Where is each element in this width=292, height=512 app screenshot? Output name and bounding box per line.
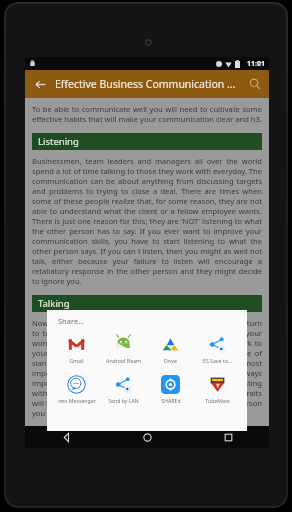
button[interactable]: SHAREit (147, 374, 194, 405)
staticText: Effective Business Communication Skills (55, 77, 241, 91)
staticText: ES Save to... (203, 357, 232, 364)
staticText: Talking (38, 297, 70, 310)
button[interactable]: Send by LAN (100, 374, 147, 405)
button[interactable]: Back (25, 70, 55, 98)
staticText: Gmail (69, 357, 84, 364)
button[interactable]: ES Save to... (194, 334, 241, 365)
button[interactable]: Gmail (53, 334, 100, 365)
button[interactable]: TubeMate (194, 374, 241, 405)
staticText: Drive (164, 357, 177, 364)
staticText: imo Messenger (58, 397, 96, 404)
button[interactable]: Recents (188, 426, 269, 448)
button[interactable]: Home (107, 426, 188, 448)
staticText: Android Beam (106, 357, 141, 364)
staticText: Send by LAN (108, 397, 139, 404)
staticText: 11:01 (247, 59, 265, 69)
staticText: Now that you have mastered the art of li… (32, 318, 262, 418)
button[interactable]: Android Beam (100, 334, 147, 365)
staticText: TubeMate (205, 397, 230, 404)
button[interactable]: imo Messenger (53, 374, 100, 405)
button[interactable]: Drive (147, 334, 194, 365)
button[interactable]: Search (241, 70, 269, 98)
staticText: To be able to communicate well you will … (32, 104, 262, 124)
button[interactable]: Back (25, 426, 107, 448)
staticText: Share... (58, 316, 85, 326)
staticText: Listening (38, 135, 79, 148)
staticText: Businessmen, team leaders and managers a… (32, 156, 262, 286)
staticText: SHAREit (161, 397, 181, 404)
